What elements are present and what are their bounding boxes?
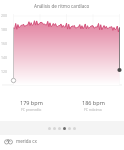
staticText: 140 — [1, 55, 8, 60]
staticText: 179 bpm — [20, 99, 43, 106]
button[interactable]: 179 bpm — [0, 99, 62, 112]
staticText: merida cx — [16, 138, 37, 144]
staticText: FC promedio — [21, 107, 42, 112]
staticText: 180 — [1, 27, 8, 32]
other: Bicycle — [4, 136, 13, 145]
staticText: 120 — [1, 69, 8, 74]
staticText: 200 — [1, 13, 8, 18]
staticText: Análisis de ritmo cardíaco — [34, 3, 90, 9]
staticText: 186 bpm — [82, 99, 105, 106]
staticText: FC máxima — [84, 107, 102, 112]
button[interactable]: Bicycle — [4, 136, 124, 145]
staticText: 160 — [1, 41, 8, 46]
button[interactable]: 186 bpm — [62, 99, 124, 112]
